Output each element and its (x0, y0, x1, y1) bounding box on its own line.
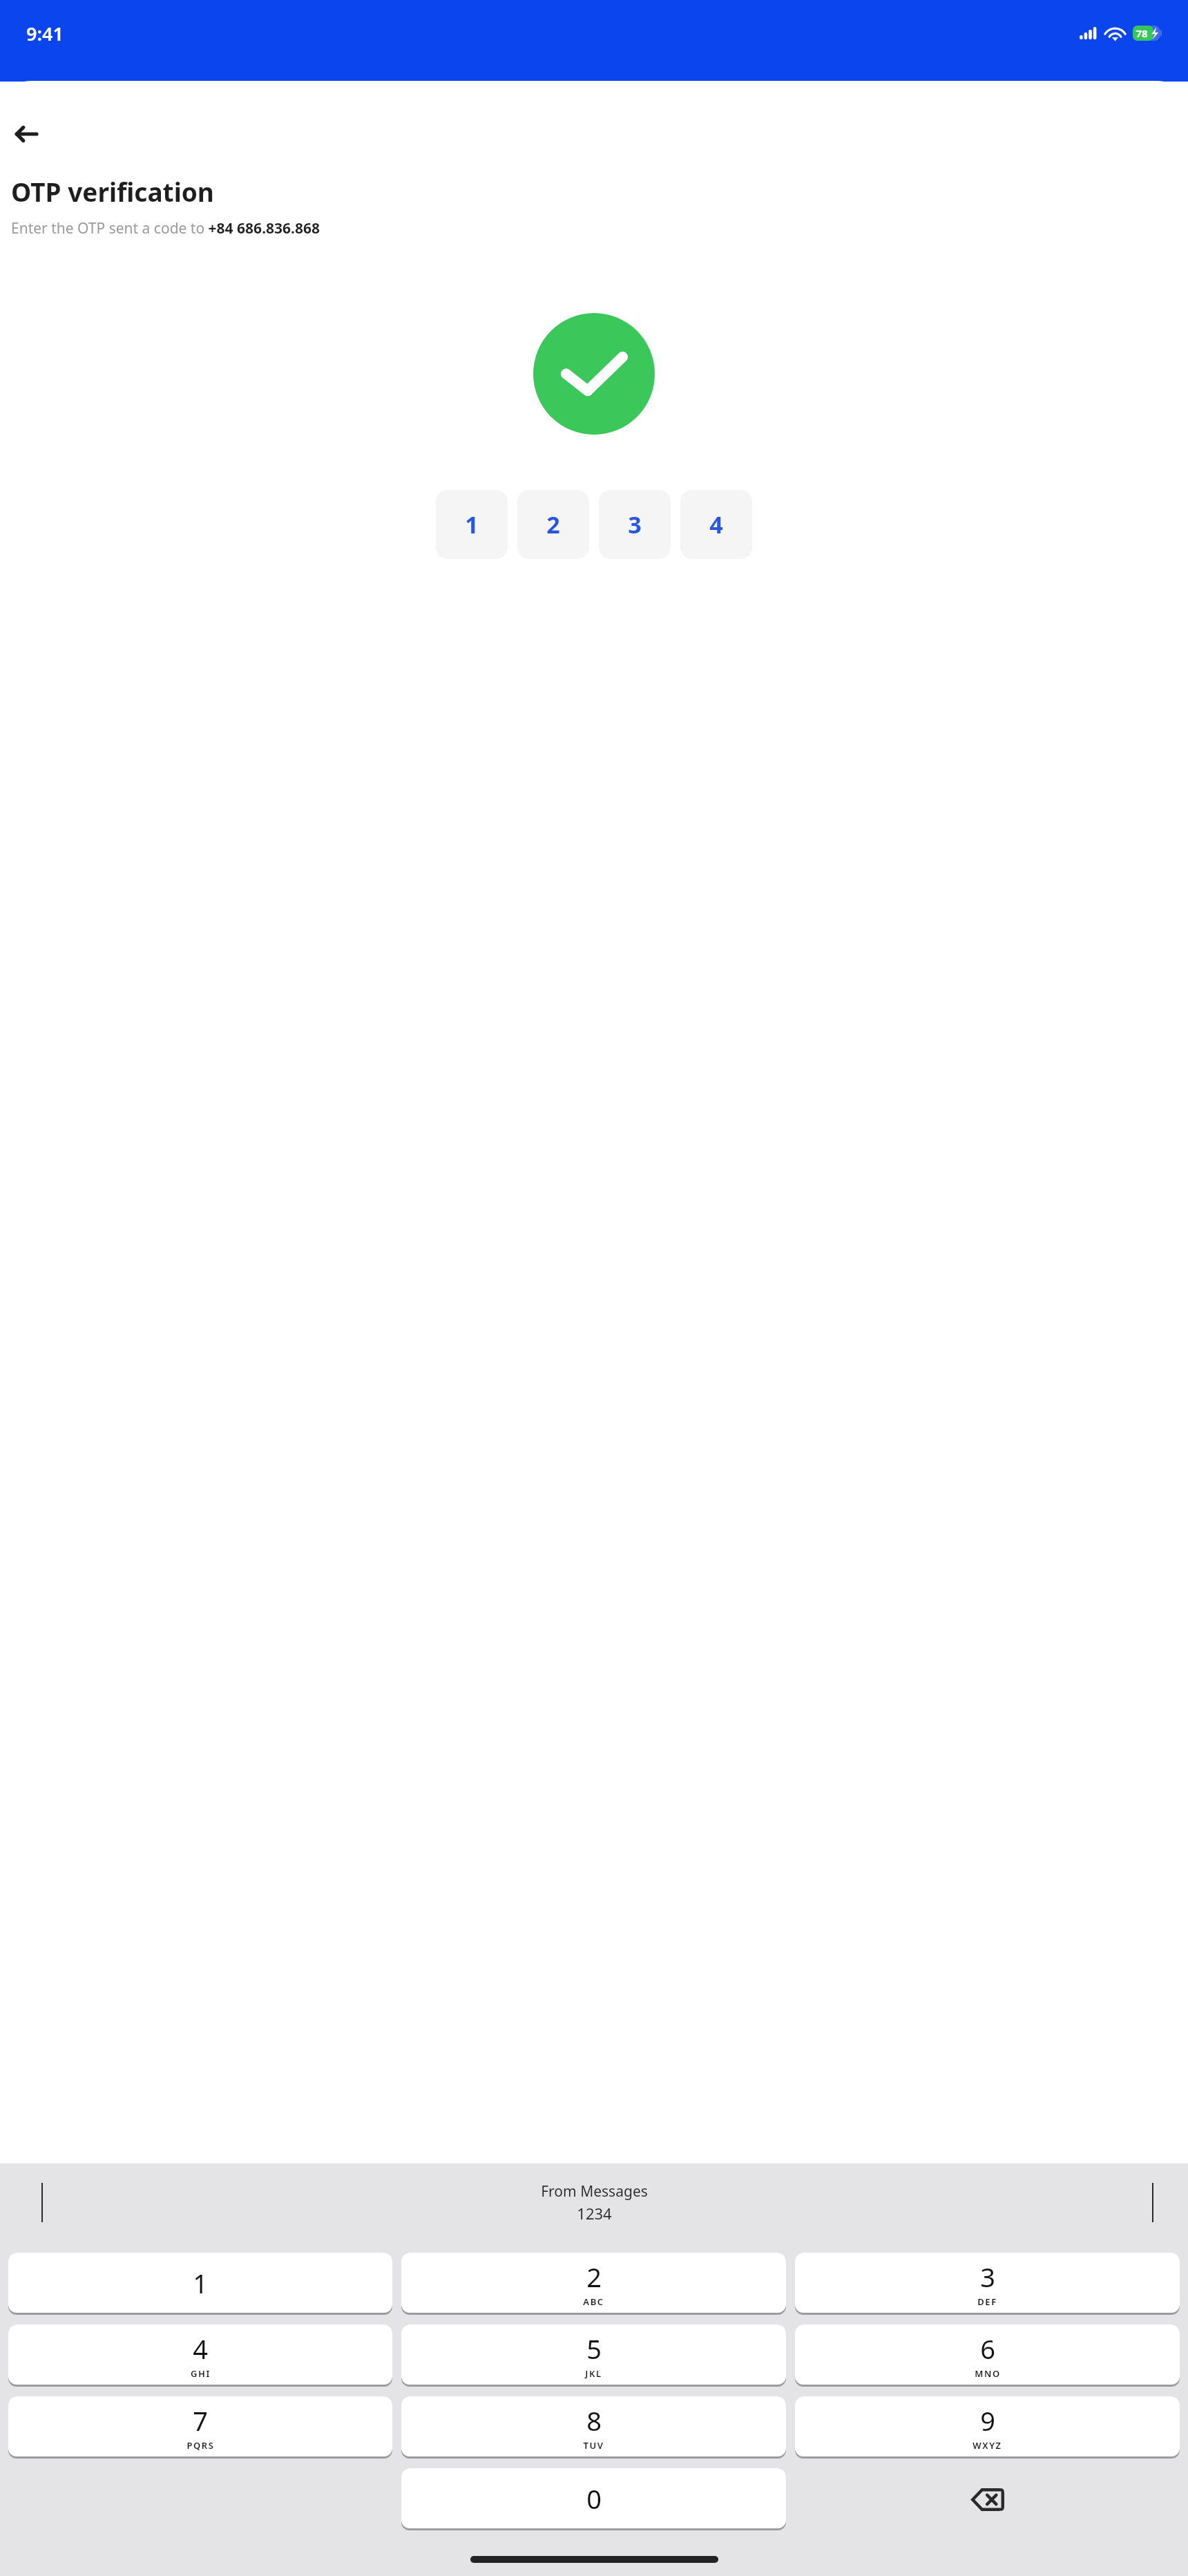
staticText: Enter the OTP sent a code to +84 686.836… (11, 218, 320, 238)
button[interactable]: 3 (795, 2253, 1180, 2315)
staticText: 4 (709, 509, 723, 540)
button[interactable]: 4 (8, 2324, 392, 2387)
button[interactable]: 1 (8, 2253, 392, 2315)
staticText: 9:41 (26, 21, 64, 46)
staticText: MNO (975, 2367, 1001, 2380)
button[interactable]: 7 (8, 2396, 392, 2459)
staticText: 1 (193, 2265, 208, 2301)
staticText: 9 (980, 2403, 995, 2438)
button[interactable]: 5 (401, 2324, 786, 2387)
staticText: PQRS (186, 2439, 215, 2452)
staticText: 0 (586, 2481, 602, 2517)
button[interactable]: 3 (599, 490, 671, 559)
button[interactable]: 9 (795, 2396, 1180, 2459)
button[interactable]: 8 (401, 2396, 786, 2459)
staticText: 3 (628, 509, 642, 540)
staticText: WXYZ (973, 2439, 1002, 2452)
staticText: 2 (586, 2259, 602, 2295)
button[interactable]: 0 (401, 2468, 786, 2530)
staticText: 4 (193, 2331, 208, 2367)
staticText: ABC (583, 2295, 604, 2308)
staticText: 1234 (577, 2203, 612, 2224)
button[interactable]: 2 (517, 490, 589, 559)
button[interactable]: 4 (680, 490, 752, 559)
button[interactable]: 2 (401, 2253, 786, 2315)
staticText: JKL (585, 2367, 602, 2380)
button[interactable]: 1 (436, 490, 508, 559)
staticText: GHI (191, 2367, 211, 2380)
staticText: DEF (977, 2295, 997, 2308)
button[interactable]: Backspace (795, 2468, 1180, 2530)
staticText: 1 (465, 509, 479, 540)
staticText: OTP verification (11, 174, 214, 209)
staticText: 2 (546, 509, 560, 540)
button[interactable]: Back (4, 112, 48, 156)
staticText: 8 (586, 2403, 602, 2438)
staticText: 7 (193, 2403, 208, 2438)
staticText: From Messages (541, 2181, 648, 2201)
staticText: 6 (980, 2331, 995, 2367)
staticText: 78 (1136, 26, 1148, 40)
staticText: 3 (980, 2259, 995, 2295)
staticText: TUV (583, 2439, 604, 2452)
button[interactable]: 6 (795, 2324, 1180, 2387)
staticText: 5 (586, 2331, 602, 2367)
